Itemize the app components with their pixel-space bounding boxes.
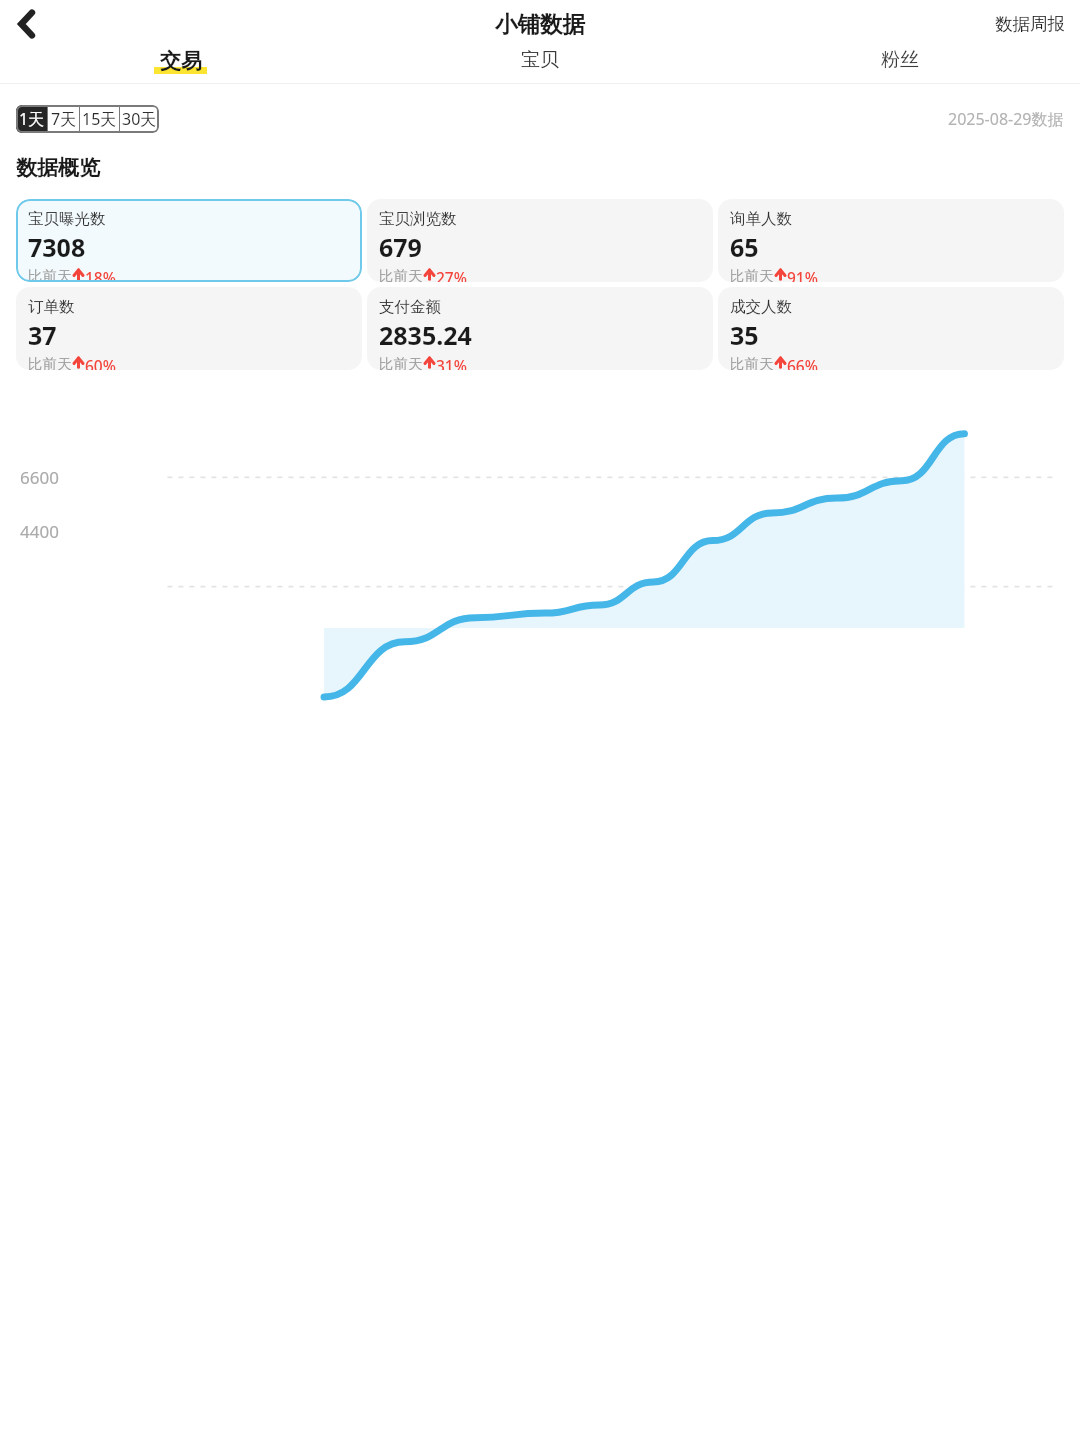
button[interactable]: 宝贝曝光数 [16,199,362,282]
staticText: 31% [436,355,467,370]
button[interactable]: 数据周报 [980,5,1080,43]
staticText: 交易 [160,48,202,74]
staticText: 4400 [20,520,59,543]
staticText: 比前天 [28,267,72,282]
staticText: 宝贝浏览数 [379,209,457,229]
staticText: 60% [85,355,116,370]
staticText: 65 [730,230,759,264]
staticText: 宝贝 [521,48,559,72]
button[interactable]: 15天 [80,105,119,133]
staticText: 比前天 [730,355,774,370]
button[interactable]: 宝贝 [360,48,720,72]
button[interactable]: 30天 [120,105,159,133]
staticText: 小铺数据 [495,10,585,38]
staticText: 6600 [20,466,59,489]
staticText: 66% [787,355,818,370]
staticText: 成交人数 [730,297,792,317]
staticText: 支付金额 [379,297,441,317]
button[interactable]: 订单数 [16,287,362,370]
staticText: 30天 [122,108,157,130]
button[interactable]: 成交人数 [718,287,1064,370]
staticText: 679 [379,230,422,264]
staticText: 比前天 [730,267,774,282]
staticText: 询单人数 [730,209,792,229]
staticText: 数据概览 [16,155,100,181]
staticText: 宝贝曝光数 [28,209,106,229]
staticText: 7308 [28,230,86,264]
button[interactable]: 粉丝 [720,48,1080,72]
staticText: 7天 [51,108,77,130]
staticText: 91% [787,267,818,282]
button[interactable]: 交易 [0,48,360,74]
staticText: 数据周报 [995,13,1065,35]
staticText: 27% [436,267,467,282]
button[interactable]: 7天 [48,105,79,133]
staticText: 订单数 [28,297,75,317]
staticText: 比前天 [379,267,423,282]
button[interactable]: 宝贝浏览数 [367,199,713,282]
staticText: 18% [85,267,116,282]
button[interactable]: Back [8,5,46,43]
button[interactable]: 询单人数 [718,199,1064,282]
staticText: 2025-08-29数据 [948,108,1064,130]
staticText: 粉丝 [881,48,919,72]
button[interactable]: 1天 [16,105,47,133]
staticText: 比前天 [28,355,72,370]
staticText: 1天 [19,108,45,130]
button[interactable]: 支付金额 [367,287,713,370]
staticText: 35 [730,318,759,352]
staticText: 比前天 [379,355,423,370]
staticText: 15天 [82,108,117,130]
staticText: 37 [28,318,57,352]
staticText: 2835.24 [379,318,472,352]
